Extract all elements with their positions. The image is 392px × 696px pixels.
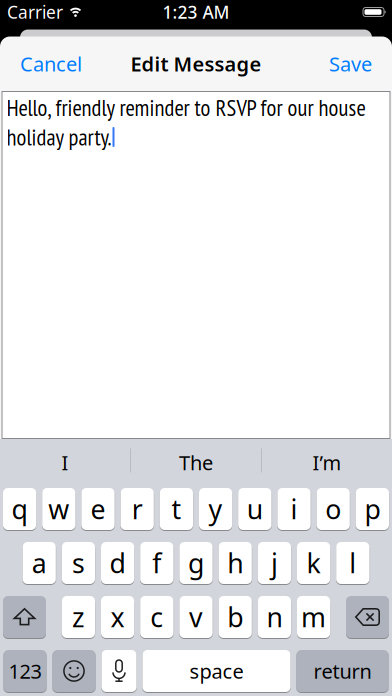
button[interactable]: r (121, 488, 154, 530)
button[interactable]: a (23, 542, 56, 584)
staticText: l (349, 545, 356, 581)
button[interactable]: s (62, 542, 95, 584)
staticText: j (271, 545, 278, 581)
button[interactable]: k (297, 542, 330, 584)
staticText: p (364, 491, 380, 527)
button[interactable]: o (317, 488, 350, 530)
button[interactable]: f (140, 542, 173, 584)
button[interactable]: p (356, 488, 389, 530)
staticText: Carrier (7, 0, 63, 23)
staticText: space (189, 658, 243, 684)
button[interactable]: Cancel (20, 50, 82, 77)
button[interactable]: space (142, 650, 290, 692)
button[interactable]: t (160, 488, 193, 530)
staticText: c (150, 599, 163, 635)
staticText: q (12, 491, 28, 527)
staticText: Edit Message (130, 50, 261, 77)
staticText: v (189, 599, 203, 635)
button[interactable]: I (0, 439, 130, 482)
button[interactable]: h (219, 542, 252, 584)
staticText: 123 (8, 658, 41, 684)
staticText: y (209, 491, 223, 527)
staticText: Cancel (20, 50, 82, 77)
staticText: w (48, 491, 69, 527)
button[interactable]: I’m (262, 439, 392, 482)
staticText: The (179, 449, 213, 476)
staticText: I (61, 449, 68, 476)
button[interactable]: m (297, 596, 330, 638)
button[interactable]: Save (329, 50, 372, 77)
button[interactable]: Shift (3, 596, 46, 638)
staticText: o (325, 491, 341, 527)
button[interactable]: x (101, 596, 134, 638)
button[interactable]: j (258, 542, 291, 584)
staticText: holiday party. (6, 122, 111, 152)
button[interactable]: Dictate (101, 650, 136, 692)
staticText: e (90, 491, 105, 527)
staticText: u (247, 491, 263, 527)
button[interactable]: l (336, 542, 369, 584)
button[interactable]: i (277, 488, 311, 530)
staticText: i (290, 491, 297, 527)
staticText: d (110, 545, 126, 581)
staticText: s (72, 545, 85, 581)
staticText: m (301, 599, 326, 635)
staticText: return (313, 658, 371, 684)
staticText: x (111, 599, 125, 635)
button[interactable]: g (179, 542, 213, 584)
staticText: t (171, 491, 181, 527)
staticText: g (188, 545, 204, 581)
button[interactable]: d (101, 542, 134, 584)
staticText: 1:23 AM (162, 0, 229, 23)
staticText: Hello, friendly reminder to RSVP for our… (6, 93, 365, 122)
staticText: b (227, 599, 243, 635)
staticText: Save (329, 50, 372, 77)
staticText: a (32, 545, 47, 581)
button[interactable]: Delete (346, 596, 389, 638)
button[interactable]: e (81, 488, 115, 530)
button[interactable]: u (238, 488, 271, 530)
button[interactable]: The (131, 439, 261, 482)
button[interactable]: b (219, 596, 252, 638)
staticText: h (227, 545, 243, 581)
staticText: f (152, 545, 161, 581)
button[interactable]: v (179, 596, 213, 638)
button[interactable]: Emoji (52, 650, 95, 692)
button[interactable]: return (296, 650, 388, 692)
button[interactable]: c (140, 596, 173, 638)
button[interactable]: 123 (3, 650, 46, 692)
button[interactable]: n (258, 596, 291, 638)
button[interactable]: z (62, 596, 95, 638)
staticText: I’m (312, 449, 341, 476)
staticText: r (132, 491, 143, 527)
button[interactable]: w (42, 488, 75, 530)
button[interactable]: y (199, 488, 232, 530)
staticText: z (72, 599, 85, 635)
button[interactable]: q (3, 488, 36, 530)
staticText: k (307, 545, 321, 581)
staticText: n (266, 599, 282, 635)
